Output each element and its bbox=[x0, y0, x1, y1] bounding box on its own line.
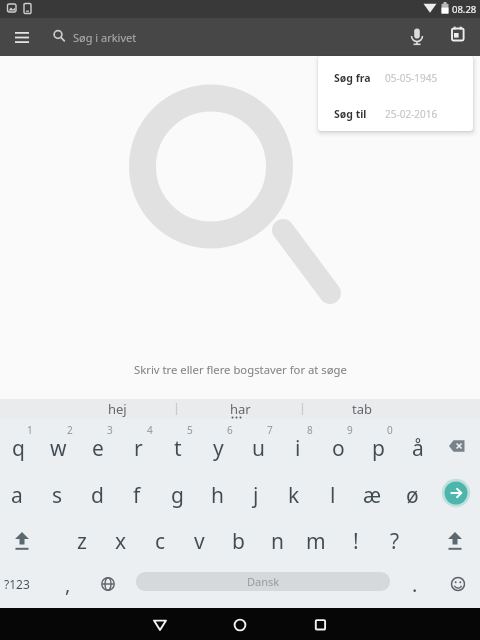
button[interactable]: y bbox=[199, 427, 237, 469]
button[interactable]: å bbox=[399, 427, 437, 469]
button[interactable]: u bbox=[239, 427, 277, 469]
button[interactable]: v bbox=[180, 520, 218, 562]
staticText: 25-02-2016 bbox=[385, 107, 438, 121]
staticText: Søg til bbox=[334, 107, 367, 121]
button[interactable]: c bbox=[141, 520, 179, 562]
button[interactable]: d bbox=[78, 474, 116, 516]
staticText: å bbox=[412, 434, 424, 463]
staticText: q bbox=[12, 434, 25, 463]
button[interactable]: l bbox=[314, 474, 352, 516]
staticText: z bbox=[77, 527, 87, 556]
button[interactable]: ? bbox=[376, 520, 414, 562]
button[interactable]: tab bbox=[304, 399, 419, 419]
button[interactable]: h bbox=[198, 474, 236, 516]
button[interactable]: Søg til bbox=[318, 97, 473, 130]
staticText: Skriv tre eller flere bogstaver for at s… bbox=[134, 362, 347, 377]
staticText: w bbox=[50, 434, 67, 463]
staticText: Søg i arkivet bbox=[73, 30, 137, 45]
button[interactable]: n bbox=[258, 520, 296, 562]
staticText: 0 bbox=[387, 423, 393, 437]
staticText: n bbox=[271, 527, 284, 556]
button[interactable]: e bbox=[79, 427, 117, 469]
staticText: har bbox=[230, 400, 251, 418]
staticText: e bbox=[92, 434, 104, 463]
button[interactable]: b bbox=[219, 520, 257, 562]
staticText: k bbox=[288, 481, 300, 510]
staticText: 7 bbox=[267, 423, 273, 437]
button[interactable] bbox=[140, 608, 180, 640]
staticText: r bbox=[134, 434, 143, 463]
button[interactable] bbox=[220, 608, 260, 640]
staticText: 4 bbox=[147, 423, 153, 437]
staticText: . bbox=[412, 571, 418, 598]
staticText: m bbox=[306, 527, 326, 556]
button[interactable]: Dansk bbox=[136, 572, 390, 591]
button[interactable]: ø bbox=[393, 474, 431, 516]
button[interactable]: x bbox=[102, 520, 140, 562]
button[interactable]: r bbox=[119, 427, 157, 469]
button[interactable]: , bbox=[53, 567, 83, 601]
staticText: tab bbox=[352, 400, 372, 418]
button[interactable]: q bbox=[0, 427, 37, 469]
button[interactable]: a bbox=[0, 474, 36, 516]
staticText: a bbox=[11, 481, 23, 510]
staticText: ? bbox=[390, 527, 400, 556]
button[interactable] bbox=[8, 23, 36, 51]
button[interactable]: j bbox=[237, 474, 275, 516]
button[interactable]: z bbox=[63, 520, 101, 562]
staticText: 5 bbox=[187, 423, 193, 437]
staticText: 05-05-1945 bbox=[385, 71, 438, 85]
staticText: 1 bbox=[27, 423, 33, 437]
button[interactable]: ! bbox=[337, 520, 375, 562]
staticText: ø bbox=[406, 481, 419, 510]
button[interactable]: s bbox=[38, 474, 76, 516]
button[interactable]: hej bbox=[60, 399, 175, 419]
button[interactable] bbox=[437, 474, 475, 512]
staticText: f bbox=[133, 481, 141, 510]
button[interactable]: . bbox=[400, 567, 430, 601]
staticText: u bbox=[252, 434, 265, 463]
button[interactable] bbox=[441, 567, 475, 601]
button[interactable]: Søg i arkivet bbox=[44, 23, 344, 51]
button[interactable]: k bbox=[275, 474, 313, 516]
staticText: 08.28 bbox=[452, 3, 477, 16]
staticText: d bbox=[91, 481, 104, 510]
button[interactable] bbox=[443, 22, 471, 50]
staticText: l bbox=[330, 481, 336, 510]
button[interactable] bbox=[440, 431, 474, 465]
button[interactable] bbox=[438, 524, 472, 558]
staticText: hej bbox=[108, 400, 127, 418]
button[interactable]: æ bbox=[353, 474, 391, 516]
staticText: 6 bbox=[227, 423, 233, 437]
button[interactable]: w bbox=[39, 427, 77, 469]
button[interactable]: i bbox=[279, 427, 317, 469]
staticText: o bbox=[332, 434, 345, 463]
button[interactable]: Søg fra bbox=[318, 61, 473, 94]
button[interactable]: g bbox=[158, 474, 196, 516]
staticText: 3 bbox=[107, 423, 113, 437]
staticText: Dansk bbox=[247, 574, 280, 589]
staticText: , bbox=[65, 571, 71, 598]
staticText: æ bbox=[363, 481, 382, 510]
button[interactable] bbox=[300, 608, 340, 640]
button[interactable] bbox=[91, 567, 125, 601]
button[interactable] bbox=[5, 524, 39, 558]
staticText: t bbox=[174, 434, 182, 463]
staticText: h bbox=[211, 481, 224, 510]
staticText: v bbox=[194, 527, 205, 556]
staticText: x bbox=[115, 527, 127, 556]
staticText: Søg fra bbox=[334, 71, 371, 85]
staticText: j bbox=[253, 481, 259, 510]
button[interactable]: ?123 bbox=[0, 567, 35, 601]
staticText: 2 bbox=[67, 423, 73, 437]
staticText: 9 bbox=[347, 423, 353, 437]
staticText: c bbox=[155, 527, 166, 556]
button[interactable] bbox=[403, 22, 431, 50]
staticText: b bbox=[232, 527, 245, 556]
button[interactable]: o bbox=[319, 427, 357, 469]
button[interactable]: p bbox=[359, 427, 397, 469]
button[interactable]: har bbox=[178, 399, 302, 419]
button[interactable]: m bbox=[297, 520, 335, 562]
button[interactable]: f bbox=[118, 474, 156, 516]
button[interactable]: t bbox=[159, 427, 197, 469]
